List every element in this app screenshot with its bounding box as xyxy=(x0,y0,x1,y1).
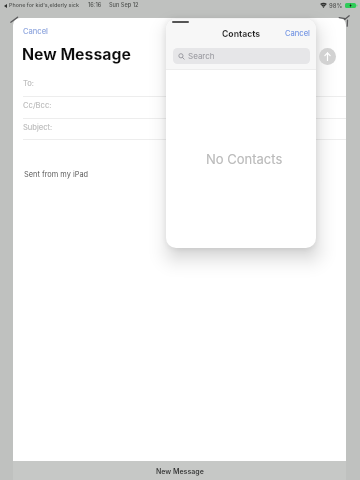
staticText: Cancel xyxy=(23,27,48,36)
button[interactable]: Send xyxy=(319,48,336,65)
button[interactable]: Search xyxy=(173,48,310,64)
staticText: New Message xyxy=(156,467,204,475)
button[interactable]: New Message xyxy=(13,461,346,480)
staticText: Contacts xyxy=(222,29,261,39)
staticText: No Contacts xyxy=(206,151,283,167)
staticText: 16:16 xyxy=(88,2,102,9)
staticText: Cancel xyxy=(285,29,310,38)
staticText: To: xyxy=(23,79,35,88)
button[interactable]: Cancel xyxy=(17,23,54,40)
staticText: New Message xyxy=(22,45,131,64)
button[interactable]: Cancel xyxy=(281,26,314,41)
staticText: 98% xyxy=(329,2,343,9)
staticText: Search xyxy=(188,51,215,61)
staticText: Phone for kid's,elderly sick xyxy=(9,2,79,9)
staticText: Sent from my iPad xyxy=(24,170,89,179)
staticText: Subject: xyxy=(23,123,53,132)
staticText: Sun Sep 12 xyxy=(109,2,139,9)
staticText: Cc/Bcc: xyxy=(23,101,52,110)
